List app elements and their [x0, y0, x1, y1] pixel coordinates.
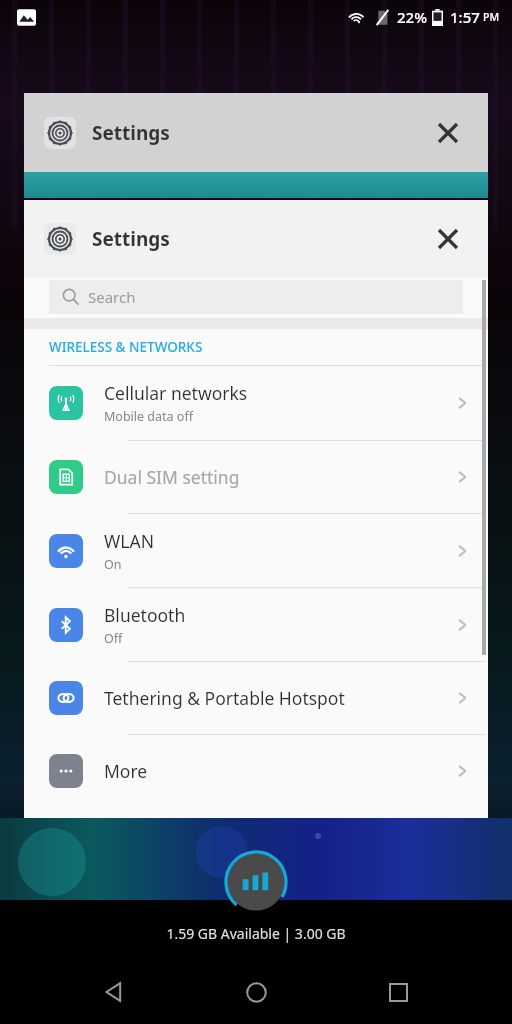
staticText: WLAN: [104, 529, 154, 553]
button[interactable]: Bluetooth: [24, 588, 488, 661]
button[interactable]: Close: [428, 113, 468, 153]
staticText: Cellular networks: [104, 381, 248, 405]
staticText: 1:57: [450, 7, 480, 27]
button[interactable]: Search: [49, 280, 463, 314]
button[interactable]: Back: [86, 964, 142, 1020]
staticText: Bluetooth: [104, 603, 186, 627]
staticText: On: [104, 556, 122, 573]
button[interactable]: WLAN: [24, 514, 488, 587]
button[interactable]: Close: [428, 219, 468, 259]
button[interactable]: Tethering & Portable Hotspot: [24, 662, 488, 734]
button[interactable]: Clear memory: [222, 848, 290, 916]
staticText: 22%: [397, 7, 427, 27]
button[interactable]: Cellular networks: [24, 366, 488, 440]
staticText: Search: [88, 287, 136, 307]
button[interactable]: Recents: [370, 964, 426, 1020]
staticText: Mobile data off: [104, 408, 193, 425]
staticText: Settings: [92, 226, 170, 252]
staticText: WIRELESS & NETWORKS: [49, 338, 203, 356]
staticText: 1.59 GB Available | 3.00 GB: [166, 924, 346, 943]
staticText: PM: [483, 10, 500, 24]
staticText: Settings: [92, 120, 170, 146]
button[interactable]: More: [24, 735, 488, 807]
button[interactable]: Home: [228, 964, 284, 1020]
staticText: Off: [104, 630, 123, 647]
staticText: More: [104, 759, 148, 783]
button[interactable]: Dual SIM setting: [24, 441, 488, 513]
staticText: Tethering & Portable Hotspot: [104, 686, 345, 710]
staticText: Dual SIM setting: [104, 465, 240, 489]
